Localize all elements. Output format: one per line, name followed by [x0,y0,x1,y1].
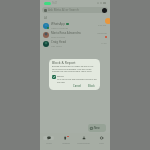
staticText: Ask Meta AI or Search [48,8,79,12]
button[interactable]: Cancel [71,83,84,88]
staticText: Chats [46,142,52,145]
button[interactable]: Report [52,75,97,83]
staticText: Calls [99,142,104,145]
staticText: WhatsApp [51,22,65,26]
button[interactable]: Profile [102,8,107,13]
button[interactable]: WhatsApp [40,21,110,30]
staticText: Updates [62,142,70,145]
staticText: Block & Report [52,60,76,65]
staticText: All [44,16,48,20]
staticText: Report [57,75,64,78]
staticText: New chat [94,126,104,130]
button[interactable]: Updates [57,133,74,150]
staticText: Yesterday [97,32,107,35]
button[interactable]: Communities [74,133,92,150]
button[interactable]: Ask Meta AI or Search [42,7,108,13]
button[interactable]: Block [86,83,97,88]
button[interactable]: Chats [40,133,57,150]
staticText: New in settings [51,26,69,29]
staticText: 9:41 [52,1,58,5]
staticText: Sent a photo [51,35,66,38]
staticText: Hey there [51,44,62,47]
staticText: Maria Rosa Alexandra [51,31,81,35]
staticText: 4:20 PM [98,24,107,27]
staticText: 11:30 [101,42,107,45]
button[interactable]: Calls [92,133,110,150]
button[interactable]: Craig Head [40,39,110,48]
staticText: Communities [77,142,90,145]
staticText: to us so the last five messages and your… [57,78,97,83]
button[interactable]: New chat [88,124,106,132]
staticText: Craig Head [51,40,67,44]
button[interactable]: Maria Rosa Alexandra [40,30,110,39]
staticText: Blocked contacts will no longer be able … [52,65,97,73]
